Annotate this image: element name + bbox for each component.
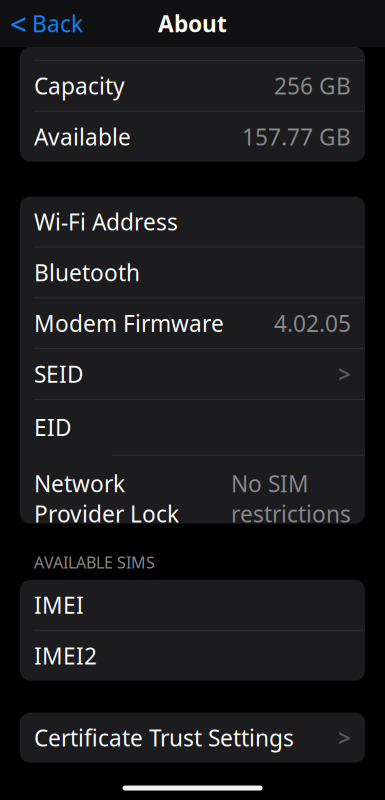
staticText: >	[338, 359, 351, 389]
staticText: Bluetooth	[34, 257, 140, 287]
staticText: Network Provider Lock	[34, 468, 179, 529]
button[interactable]: SEID	[20, 349, 365, 399]
staticText: SEID	[34, 359, 84, 389]
button[interactable]: Network Provider Lock	[20, 474, 365, 524]
staticText: Certificate Trust Settings	[34, 723, 294, 753]
staticText: IMEI	[34, 590, 84, 620]
button[interactable]: Wi-Fi Address	[20, 197, 365, 247]
button[interactable]: Modem Firmware	[20, 298, 365, 348]
staticText: <	[10, 4, 27, 43]
staticText: IMEI2	[34, 641, 97, 671]
staticText: >	[338, 723, 351, 753]
staticText: Available	[34, 121, 131, 152]
button[interactable]: Certificate Trust Settings	[20, 713, 365, 763]
staticText: 256 GB	[274, 71, 351, 101]
staticText: About	[158, 8, 227, 38]
button[interactable]: Available	[20, 112, 365, 162]
staticText: EID	[34, 412, 72, 442]
staticText: 157.77 GB	[242, 121, 351, 152]
staticText: Capacity	[34, 71, 125, 101]
staticText: AVAILABLE SIMS	[34, 552, 155, 573]
staticText: No SIM restrictions	[231, 468, 351, 529]
staticText: Wi-Fi Address	[34, 206, 178, 237]
staticText: Back	[32, 8, 83, 38]
button[interactable]: IMEI	[20, 580, 365, 630]
staticText: Modem Firmware	[34, 308, 224, 338]
button[interactable]: Capacity	[20, 61, 365, 111]
button[interactable]: IMEI2	[20, 631, 365, 681]
button[interactable]: Bluetooth	[20, 247, 365, 297]
button[interactable]: <	[0, 1, 93, 45]
staticText: 4.02.05	[274, 308, 351, 338]
